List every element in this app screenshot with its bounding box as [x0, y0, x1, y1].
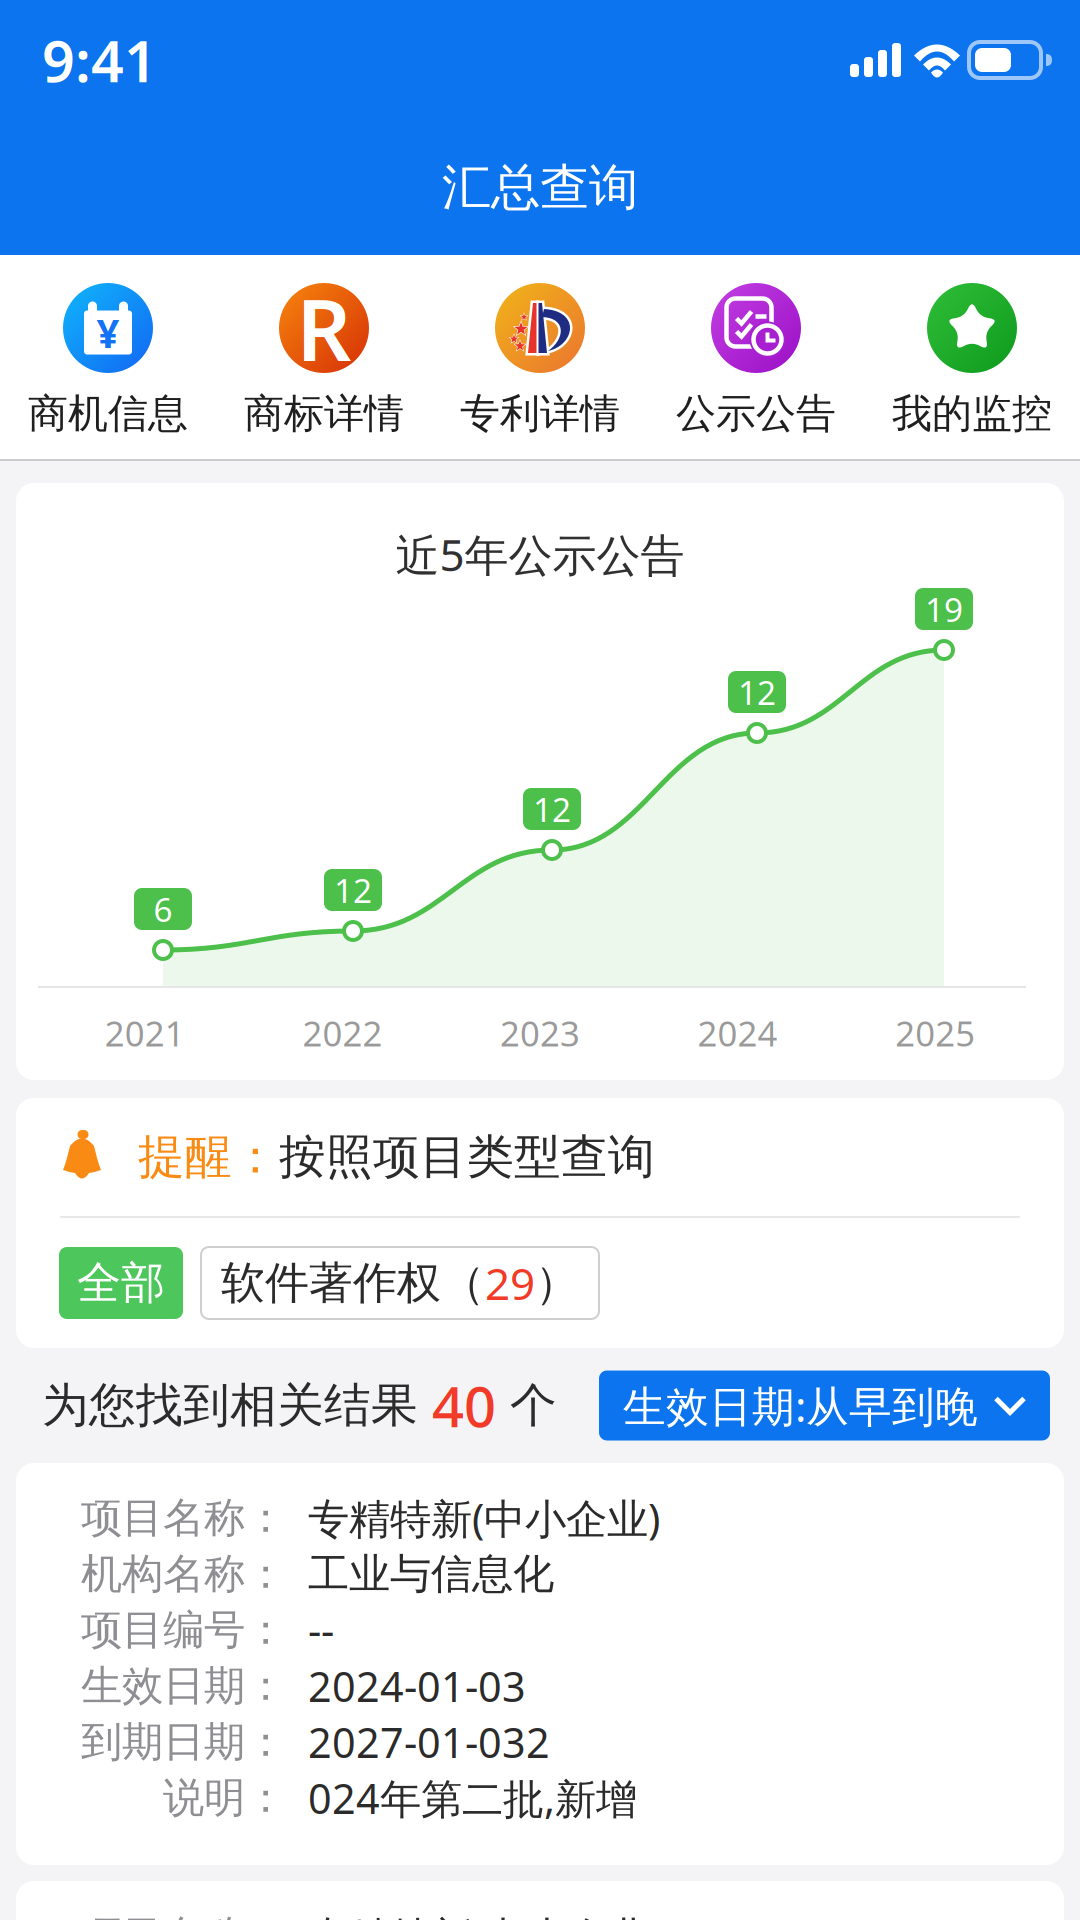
button[interactable]: 公示公告 [648, 283, 864, 438]
button[interactable]: R [216, 283, 432, 438]
staticText: 机构名称： [81, 1549, 286, 1599]
staticText: 生效日期： [81, 1661, 286, 1711]
staticText: 2027-01-032 [308, 1715, 550, 1769]
staticText: 29 [485, 1254, 535, 1312]
staticText: 40 [432, 1368, 496, 1443]
staticText: 024年第二批,新增 [308, 1771, 637, 1825]
staticText: 生效日期:从早到晚 [623, 1377, 978, 1434]
staticText: 专精特新(中小企业) [308, 1491, 660, 1545]
staticText: 专利详情 [460, 389, 620, 438]
staticText: R [296, 271, 351, 385]
staticText: 到期日期： [81, 1717, 286, 1767]
staticText: 2022 [302, 1010, 382, 1056]
staticText: 19 [925, 587, 963, 631]
staticText: 项目名称： [81, 1911, 286, 1920]
staticText: 9:41 [42, 22, 157, 98]
staticText: 12 [738, 670, 776, 714]
staticText: 提醒： [138, 1128, 279, 1186]
staticText: 2024 [698, 1010, 778, 1056]
staticText: 个 [496, 1377, 557, 1434]
staticText: 近5年公示公告 [395, 525, 684, 583]
button[interactable]: 项目名称： [16, 1463, 1064, 1865]
button[interactable]: 我的监控 [864, 283, 1080, 438]
button[interactable]: 软件著作权（ [201, 1247, 599, 1319]
staticText: 12 [533, 787, 571, 831]
button[interactable]: 专利详情 [432, 283, 648, 438]
staticText: -- [308, 1603, 334, 1657]
staticText: 工业与信息化 [308, 1549, 554, 1599]
button[interactable]: 全部 [59, 1247, 183, 1319]
staticText: 我的监控 [892, 389, 1052, 438]
staticText: 2023 [500, 1010, 580, 1056]
staticText: 汇总查询 [442, 157, 638, 218]
staticText: 2024-01-03 [308, 1659, 526, 1713]
staticText: 商机信息 [28, 389, 188, 438]
staticText: 公示公告 [676, 389, 836, 438]
staticText: ¥ [96, 306, 119, 359]
staticText: 项目编号： [81, 1605, 286, 1655]
staticText: 2021 [105, 1010, 185, 1056]
button[interactable]: ¥ [0, 283, 216, 438]
staticText: 2025 [895, 1010, 975, 1056]
staticText: 6 [153, 887, 172, 931]
staticText: 全部 [77, 1256, 165, 1310]
staticText: 商标详情 [244, 389, 404, 438]
staticText: 为您找到相关结果 [42, 1377, 432, 1434]
staticText: 软件著作权（ [221, 1256, 485, 1310]
button[interactable]: 生效日期:从早到晚 [599, 1370, 1050, 1440]
staticText: 项目名称： [81, 1493, 286, 1543]
staticText: 12 [334, 868, 372, 912]
staticText: ） [535, 1256, 579, 1310]
staticText: 专精特新(中小企业) [308, 1909, 660, 1920]
staticText: 说明： [163, 1773, 286, 1823]
button[interactable]: 项目名称： [16, 1881, 1064, 1920]
staticText: 按照项目类型查询 [279, 1128, 655, 1186]
